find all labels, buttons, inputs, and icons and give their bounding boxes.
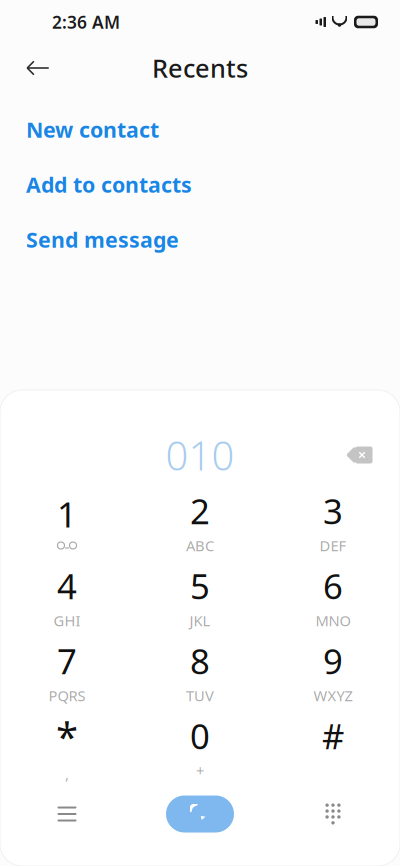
staticText: Send message	[26, 225, 179, 254]
staticText: *	[56, 709, 78, 762]
button[interactable]: 5	[133, 559, 266, 634]
staticText: WXYZ	[313, 686, 352, 705]
staticText: 4	[57, 563, 77, 609]
staticText: 0	[190, 713, 210, 759]
staticText: PQRS	[48, 686, 85, 705]
button[interactable]: Delete	[334, 435, 382, 475]
button[interactable]: Hide keypad	[266, 786, 399, 842]
staticText: +	[196, 761, 204, 780]
button[interactable]: Call log options	[0, 786, 133, 842]
button[interactable]: 7	[0, 634, 133, 709]
button[interactable]: Call	[133, 786, 266, 842]
button[interactable]: 3	[266, 484, 399, 559]
button[interactable]: Send message	[0, 212, 400, 267]
staticText: 6	[323, 563, 343, 609]
staticText: 7	[57, 638, 77, 684]
button[interactable]: 9	[266, 634, 399, 709]
staticText: JKL	[189, 611, 210, 630]
button[interactable]: #	[266, 709, 399, 784]
button[interactable]: 8	[133, 634, 266, 709]
button[interactable]: 0	[133, 709, 266, 784]
button[interactable]: Add to contacts	[0, 157, 400, 212]
button[interactable]: 1	[0, 484, 133, 559]
button[interactable]: New contact	[0, 102, 400, 157]
staticText: 1	[57, 491, 77, 537]
staticText: 2:36 AM	[52, 10, 120, 33]
staticText: ,	[65, 764, 69, 784]
staticText: 8	[190, 638, 210, 684]
staticText: #	[322, 713, 344, 759]
staticText: MNO	[315, 611, 350, 630]
staticText: Recents	[152, 51, 248, 85]
button[interactable]: 2	[133, 484, 266, 559]
staticText: 5	[190, 563, 210, 609]
button[interactable]: 6	[266, 559, 399, 634]
staticText: 9	[323, 638, 343, 684]
staticText: Add to contacts	[26, 170, 192, 199]
button[interactable]: *	[0, 709, 133, 784]
staticText: ABC	[186, 536, 214, 555]
staticText: DEF	[319, 536, 346, 555]
staticText: TUV	[186, 686, 214, 705]
staticText: 2	[190, 488, 210, 534]
staticText: 3	[323, 488, 343, 534]
button[interactable]: Back	[14, 44, 62, 92]
staticText: GHI	[53, 611, 80, 630]
staticText: New contact	[26, 115, 159, 144]
staticText: 010	[165, 428, 234, 481]
button[interactable]: 4	[0, 559, 133, 634]
